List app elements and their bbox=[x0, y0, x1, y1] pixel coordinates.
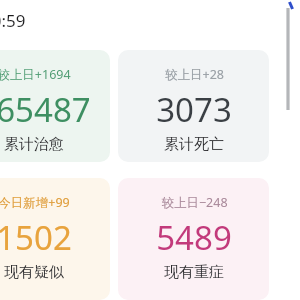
button[interactable]: 累计治愈 165487 bbox=[0, 50, 110, 162]
staticText: 现有疑似 bbox=[4, 263, 64, 282]
button[interactable]: 现有重症 5489 bbox=[118, 178, 269, 300]
staticText: 5489 bbox=[156, 215, 232, 260]
staticText: 165487 bbox=[0, 87, 91, 132]
staticText: 较上日+28 bbox=[165, 66, 224, 83]
button[interactable]: 现有疑似 1502 bbox=[0, 178, 110, 300]
staticText: 累计死亡 bbox=[164, 135, 224, 154]
staticText: 较上日−248 bbox=[161, 194, 228, 211]
staticText: 10:59 bbox=[0, 9, 26, 32]
staticText: 现有重症 bbox=[164, 263, 224, 282]
staticText: 较上日+1694 bbox=[0, 66, 71, 83]
button[interactable]: 累计死亡 3073 bbox=[118, 50, 269, 162]
staticText: 3073 bbox=[156, 87, 232, 132]
staticText: 今日新增+99 bbox=[0, 194, 70, 211]
staticText: 1502 bbox=[0, 215, 72, 260]
staticText: 累计治愈 bbox=[4, 135, 64, 154]
